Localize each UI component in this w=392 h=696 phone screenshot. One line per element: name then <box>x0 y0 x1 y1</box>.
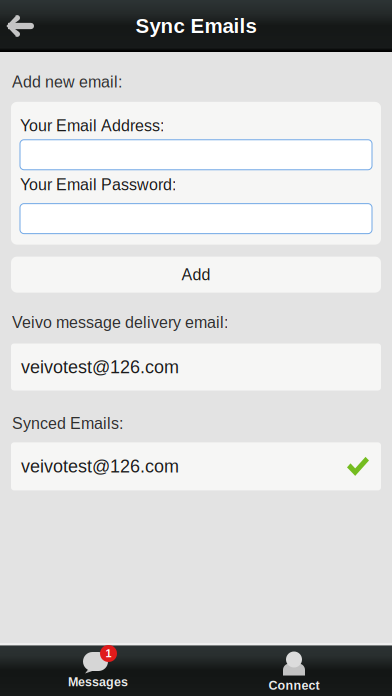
staticText: Connect <box>268 678 319 692</box>
button[interactable]: Connect <box>196 640 392 696</box>
staticText: 1 <box>105 647 111 660</box>
staticText: Synced Emails: <box>12 414 123 432</box>
button[interactable]: 1 <box>0 641 196 696</box>
staticText: Your Email Password: <box>20 176 176 194</box>
staticText: Veivo message delivery email: <box>12 314 228 331</box>
button[interactable]: Add <box>11 257 381 293</box>
staticText: Your Email Address: <box>20 117 164 135</box>
staticText: Add new email: <box>12 73 122 91</box>
staticText: Add <box>181 266 210 284</box>
staticText: veivotest@126.com <box>21 456 179 476</box>
button[interactable]: Back <box>0 0 60 51</box>
staticText: Sync Emails <box>135 14 256 37</box>
staticText: Messages <box>68 675 128 689</box>
staticText: veivotest@126.com <box>21 357 179 377</box>
